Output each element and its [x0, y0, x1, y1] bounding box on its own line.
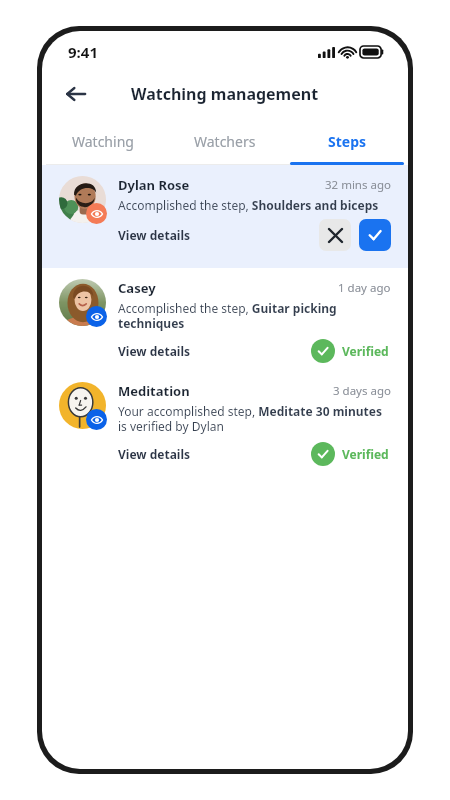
- staticText: Dylan Rose: [118, 176, 325, 194]
- staticText: 1 day ago: [338, 280, 391, 296]
- button[interactable]: Casey: [42, 268, 408, 371]
- staticText: 32 mins ago: [325, 177, 391, 193]
- button[interactable]: Steps: [286, 117, 408, 165]
- button[interactable]: View details: [118, 227, 191, 243]
- staticText: 9:41: [68, 42, 98, 62]
- staticText: Watching: [72, 132, 134, 151]
- staticText: Watching management: [131, 83, 319, 105]
- staticText: Meditation: [118, 382, 333, 400]
- staticText: Accomplished the step, Guitar picking te…: [118, 300, 391, 331]
- button[interactable]: Watchers: [164, 117, 286, 165]
- staticText: Verified: [342, 343, 389, 359]
- button[interactable]: Dylan Rose: [42, 165, 408, 268]
- button[interactable]: Watching: [42, 117, 164, 165]
- button[interactable]: Reject: [319, 219, 351, 251]
- staticText: Steps: [328, 132, 367, 151]
- button[interactable]: Back: [56, 74, 96, 114]
- staticText: View details: [118, 343, 191, 359]
- button[interactable]: Verified: [309, 440, 391, 468]
- button[interactable]: View details: [118, 446, 191, 462]
- staticText: Casey: [118, 279, 338, 297]
- staticText: Your accomplished step, Meditate 30 minu…: [118, 403, 391, 434]
- staticText: Accomplished the step, Shoulders and bic…: [118, 197, 379, 213]
- button[interactable]: Approve: [359, 219, 391, 251]
- staticText: Verified: [342, 446, 389, 462]
- button[interactable]: Meditation: [42, 371, 408, 474]
- staticText: Watchers: [194, 132, 256, 151]
- button[interactable]: Verified: [309, 337, 391, 365]
- staticText: 3 days ago: [333, 383, 391, 399]
- staticText: View details: [118, 227, 191, 243]
- button[interactable]: View details: [118, 343, 191, 359]
- staticText: View details: [118, 446, 191, 462]
